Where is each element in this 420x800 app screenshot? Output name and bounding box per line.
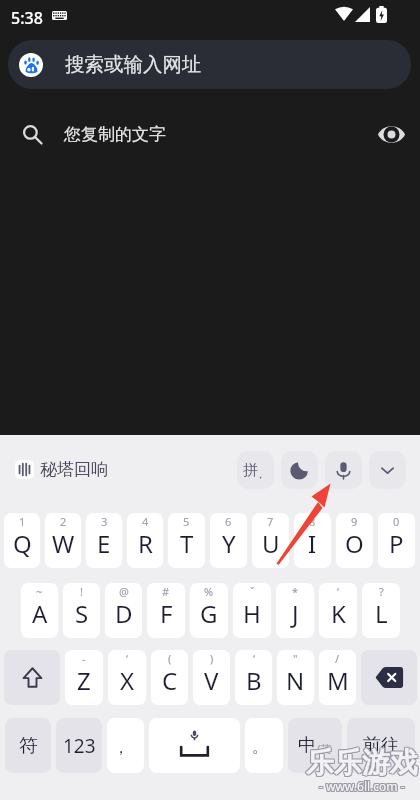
- button[interactable]: Night mode: [281, 451, 318, 489]
- staticText: 8: [309, 514, 316, 529]
- button[interactable]: Space: [149, 718, 240, 773]
- staticText: N: [286, 664, 305, 697]
- button[interactable]: ~: [21, 583, 58, 638]
- staticText: ~: [36, 584, 43, 599]
- staticText: I: [308, 527, 317, 560]
- button[interactable]: @: [105, 583, 142, 638]
- staticText: 乐乐游戏: [305, 744, 417, 779]
- button[interactable]: 6: [210, 513, 247, 568]
- button[interactable]: ‘: [108, 650, 146, 705]
- staticText: X: [120, 664, 135, 697]
- staticText: 乐乐游戏: [307, 744, 419, 779]
- staticText: U: [262, 527, 280, 560]
- staticText: - www.6ll.com -: [320, 777, 406, 793]
- staticText: 5:38: [11, 7, 43, 29]
- button[interactable]: Shift: [4, 650, 60, 705]
- staticText: (: [168, 651, 172, 666]
- staticText: 0: [393, 514, 400, 529]
- staticText: - www.6ll.com -: [318, 777, 404, 793]
- button[interactable]: Backspace: [361, 650, 417, 705]
- staticText: A: [32, 597, 48, 630]
- button[interactable]: 9: [336, 513, 373, 568]
- staticText: T: [180, 527, 194, 560]
- staticText: ): [210, 651, 214, 666]
- staticText: 2: [60, 514, 67, 529]
- staticText: !: [80, 584, 83, 599]
- button[interactable]: (: [151, 650, 188, 705]
- staticText: #: [162, 584, 170, 599]
- button[interactable]: -: [65, 650, 103, 705]
- staticText: 乐乐游戏: [305, 746, 417, 781]
- button[interactable]: 7: [252, 513, 289, 568]
- button[interactable]: 8: [294, 513, 331, 568]
- staticText: 符: [19, 734, 38, 758]
- staticText: *: [292, 584, 299, 599]
- button[interactable]: 5: [168, 513, 205, 568]
- button[interactable]: 前往: [347, 718, 415, 773]
- button[interactable]: 123: [56, 718, 102, 773]
- staticText: 秘塔回响: [40, 459, 108, 480]
- button[interactable]: ": [277, 650, 314, 705]
- button[interactable]: 。: [245, 718, 283, 773]
- staticText: -: [82, 651, 86, 666]
- button[interactable]: %: [190, 583, 228, 638]
- staticText: P: [389, 527, 404, 560]
- staticText: J: [292, 597, 299, 630]
- button[interactable]: 1: [4, 513, 40, 568]
- button[interactable]: ‘: [235, 650, 272, 705]
- button[interactable]: Pinyin mode: [237, 451, 274, 489]
- button[interactable]: Voice input: [325, 451, 362, 489]
- staticText: - www.6ll.com -: [318, 778, 404, 794]
- staticText: K: [331, 597, 346, 630]
- staticText: ，: [255, 467, 266, 481]
- staticText: 乐乐游戏: [306, 746, 418, 781]
- button[interactable]: !: [63, 583, 100, 638]
- staticText: H: [243, 597, 261, 630]
- button[interactable]: 符: [5, 718, 51, 773]
- staticText: /: [335, 651, 340, 666]
- button[interactable]: ): [193, 650, 230, 705]
- staticText: - www.6ll.com -: [319, 779, 405, 795]
- button[interactable]: ?: [362, 583, 400, 638]
- staticText: W: [52, 527, 75, 560]
- button[interactable]: /: [319, 650, 356, 705]
- button[interactable]: 0: [378, 513, 415, 568]
- staticText: - www.6ll.com -: [319, 778, 405, 794]
- staticText: E: [97, 527, 111, 560]
- button[interactable]: ，: [107, 718, 144, 773]
- staticText: 6: [225, 514, 232, 529]
- button[interactable]: 3: [86, 513, 122, 568]
- button[interactable]: #: [147, 583, 185, 638]
- button[interactable]: 秘塔回响: [15, 459, 108, 480]
- button[interactable]: 中: [288, 718, 342, 773]
- staticText: F: [160, 597, 173, 630]
- staticText: ": [293, 651, 298, 666]
- button[interactable]: 2: [45, 513, 81, 568]
- staticText: 9: [351, 514, 358, 529]
- staticText: %: [204, 584, 214, 599]
- staticText: ˇ: [250, 584, 255, 599]
- staticText: 1: [19, 514, 26, 529]
- staticText: 。: [252, 737, 268, 757]
- button[interactable]: 搜索或输入网址: [8, 40, 411, 89]
- button[interactable]: Show copied text: [368, 111, 414, 157]
- staticText: - www.6ll.com -: [320, 779, 406, 795]
- staticText: G: [200, 597, 218, 630]
- button[interactable]: 您复制的文字: [0, 105, 420, 163]
- staticText: Z: [77, 664, 91, 697]
- staticText: R: [138, 527, 153, 560]
- staticText: 乐乐游戏: [307, 745, 419, 780]
- staticText: - www.6ll.com -: [320, 778, 406, 794]
- button[interactable]: *: [276, 583, 314, 638]
- button[interactable]: Hide keyboard: [369, 451, 406, 489]
- staticText: 4: [142, 514, 149, 529]
- staticText: 乐乐游戏: [305, 745, 417, 780]
- button[interactable]: 4: [127, 513, 163, 568]
- staticText: 拼: [243, 461, 258, 480]
- staticText: 中: [298, 734, 316, 757]
- staticText: - www.6ll.com -: [318, 779, 404, 795]
- button[interactable]: ˇ: [233, 583, 271, 638]
- staticText: 搜索或输入网址: [65, 52, 202, 77]
- button[interactable]: ‘: [319, 583, 357, 638]
- staticText: S: [75, 597, 89, 630]
